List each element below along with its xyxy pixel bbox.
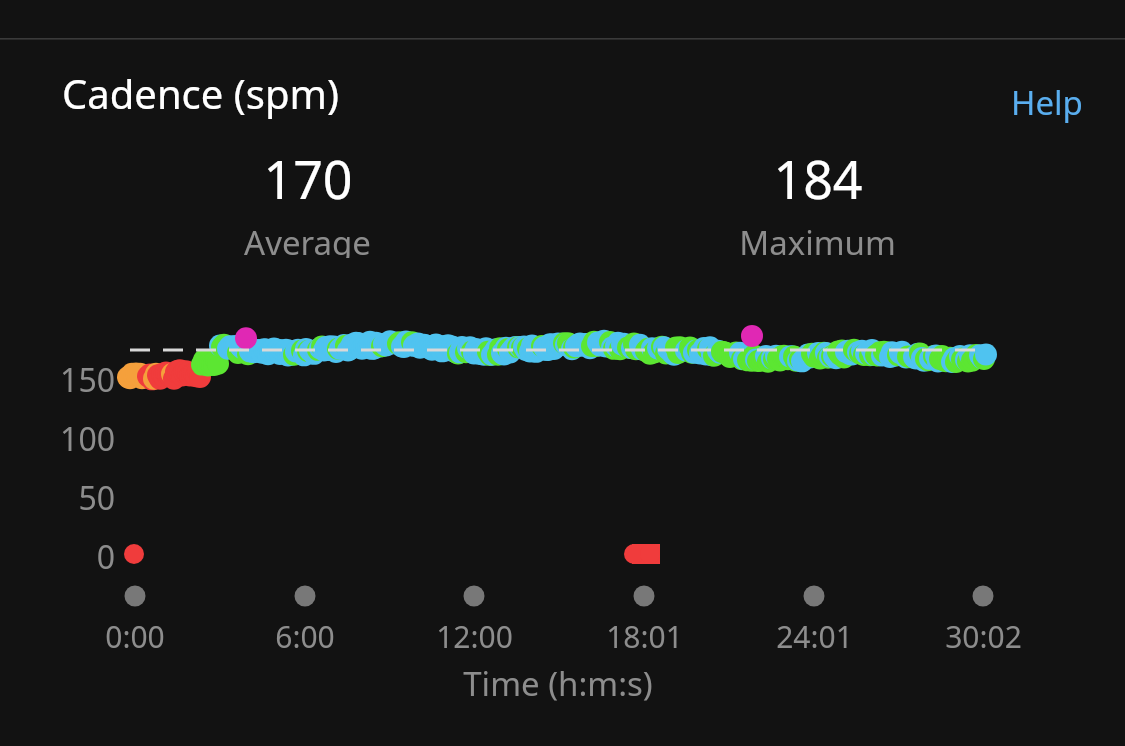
staticText: 0:00 (105, 616, 165, 657)
staticText: 30:02 (945, 616, 1022, 657)
staticText: 150 (60, 358, 115, 398)
staticText: Help (1011, 80, 1083, 125)
button[interactable]: Cadence (spm) (62, 66, 339, 120)
staticText: 100 (60, 417, 115, 457)
staticText: Cadence (spm) (62, 66, 339, 120)
staticText: Time (h:m:s) (463, 661, 653, 706)
staticText: 24:01 (776, 616, 853, 657)
staticText: 184 (773, 143, 863, 214)
button[interactable]: Help (1011, 80, 1083, 125)
staticText: 50 (78, 476, 115, 516)
button[interactable]: 184 (667, 143, 967, 258)
button[interactable]: 170 (157, 143, 457, 258)
staticText: Maximum (739, 220, 896, 258)
staticText: Average (244, 220, 371, 258)
staticText: 18:01 (606, 616, 683, 657)
staticText: 170 (263, 143, 353, 214)
other: Cadence chart over time (0, 0, 1125, 746)
staticText: 6:00 (275, 616, 335, 657)
staticText: 0 (96, 535, 115, 575)
staticText: 12:00 (436, 616, 513, 657)
